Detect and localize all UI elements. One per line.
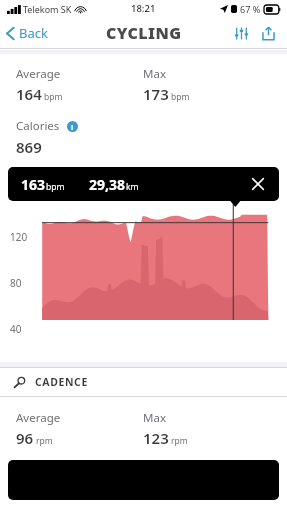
staticText: rpm bbox=[36, 435, 53, 447]
button[interactable]: Calories info bbox=[67, 121, 78, 132]
staticText: 123 bbox=[143, 428, 169, 448]
staticText: i bbox=[71, 122, 74, 132]
staticText: 29,38 bbox=[89, 175, 126, 194]
staticText: bpm bbox=[46, 181, 65, 193]
staticText: 173 bbox=[143, 84, 169, 104]
staticText: bpm bbox=[44, 91, 63, 103]
button[interactable]: Close bbox=[249, 175, 267, 193]
staticText: Calories bbox=[16, 118, 60, 134]
button[interactable]: Back bbox=[6, 24, 48, 42]
staticText: Telekom SK bbox=[23, 3, 72, 15]
staticText: CADENCE bbox=[35, 375, 88, 389]
staticText: 67 % bbox=[240, 3, 261, 15]
staticText: 18:21 bbox=[131, 2, 156, 15]
staticText: Average bbox=[16, 66, 61, 82]
staticText: 40 bbox=[10, 322, 36, 336]
other: Cadence bbox=[13, 375, 28, 390]
staticText: 869 bbox=[16, 137, 42, 157]
button[interactable]: Filter settings bbox=[230, 22, 252, 44]
button[interactable]: Share bbox=[257, 22, 279, 44]
staticText: km bbox=[126, 181, 139, 193]
staticText: rpm bbox=[171, 435, 188, 447]
staticText: Back bbox=[19, 24, 48, 42]
staticText: bpm bbox=[171, 91, 190, 103]
staticText: Average bbox=[16, 410, 61, 426]
staticText: Max bbox=[143, 66, 166, 82]
staticText: 80 bbox=[10, 276, 36, 290]
button[interactable] bbox=[8, 460, 279, 500]
button[interactable]: 163 bbox=[8, 167, 279, 201]
staticText: 164 bbox=[16, 84, 42, 104]
staticText: CYCLING bbox=[106, 22, 182, 44]
staticText: 160 bbox=[10, 184, 36, 198]
staticText: 163 bbox=[21, 175, 46, 194]
staticText: 120 bbox=[10, 230, 36, 244]
staticText: Max bbox=[143, 410, 166, 426]
staticText: 96 bbox=[16, 428, 34, 448]
